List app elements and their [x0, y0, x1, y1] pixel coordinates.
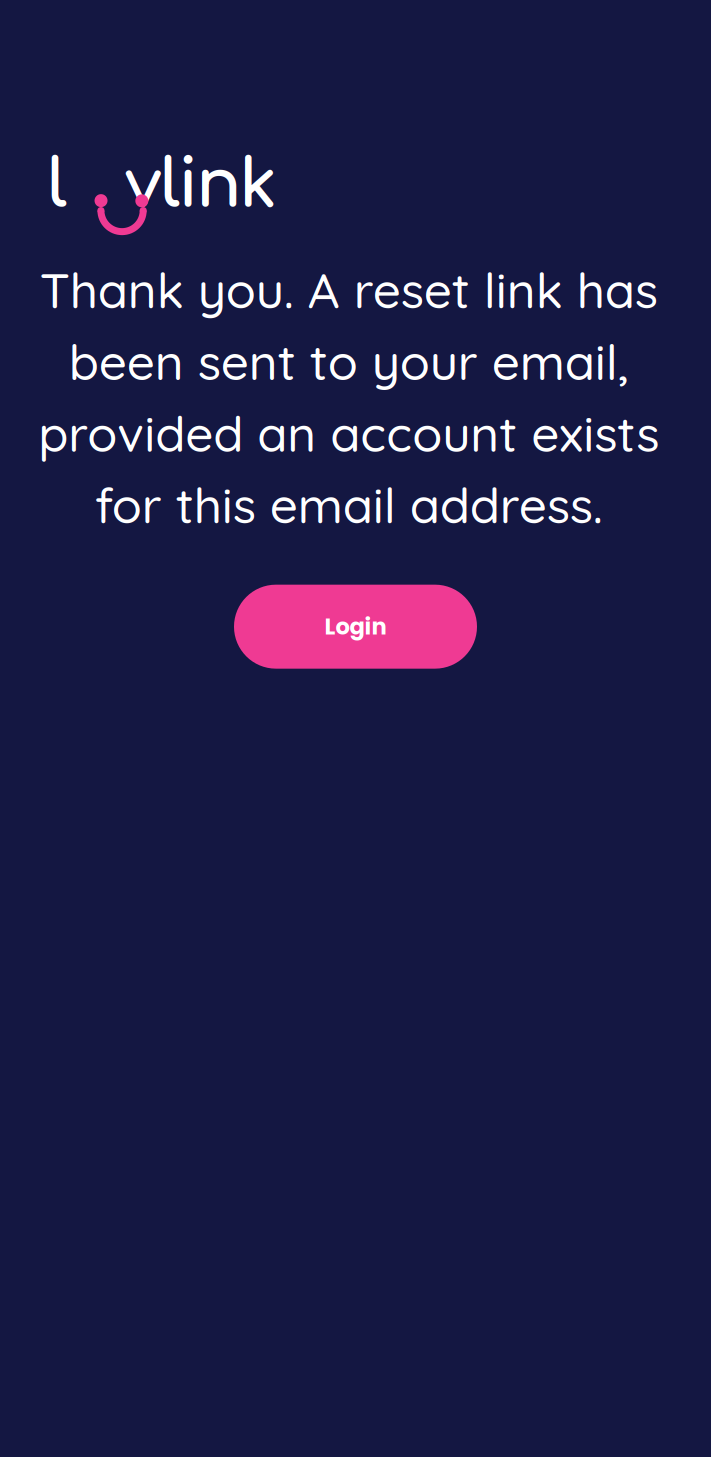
staticText: Login	[324, 611, 386, 642]
button[interactable]: Login	[234, 585, 477, 669]
staticText: vlink	[125, 148, 277, 222]
staticText: l	[47, 148, 67, 222]
staticText: Thank you. A reset link has been sent to…	[38, 259, 659, 536]
